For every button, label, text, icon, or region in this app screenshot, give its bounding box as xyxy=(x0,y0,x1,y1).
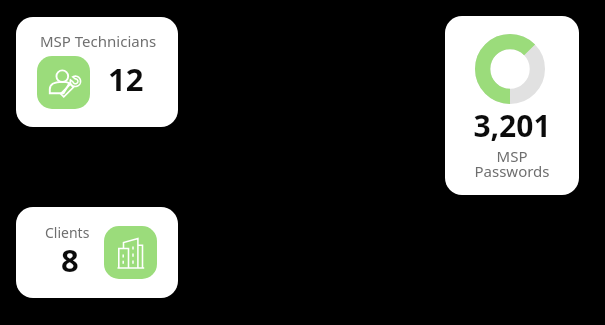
button[interactable]: MSP Technicians xyxy=(16,17,178,127)
button[interactable]: Clients xyxy=(16,207,178,298)
staticText: MSP Technicians xyxy=(40,31,157,51)
other: Password usage chart xyxy=(475,34,545,104)
staticText: 12 xyxy=(108,58,144,100)
staticText: MSP Passwords xyxy=(445,146,579,181)
staticText: Clients xyxy=(45,223,90,242)
button[interactable]: Password usage chart xyxy=(445,16,579,195)
staticText: 3,201 xyxy=(445,105,579,146)
staticText: 8 xyxy=(61,239,79,281)
other: Clients xyxy=(104,226,157,279)
other: MSP Technicians xyxy=(37,56,90,109)
